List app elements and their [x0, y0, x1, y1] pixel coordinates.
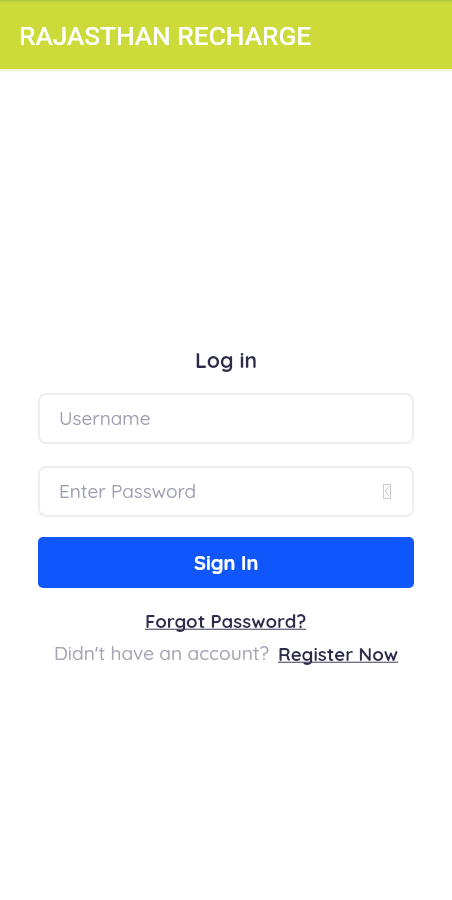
- staticText: RAJASTHAN RECHARGE: [19, 21, 312, 52]
- button[interactable]: Username: [38, 393, 414, 444]
- staticText: Log in: [0, 347, 452, 374]
- button[interactable]: Register Now: [278, 642, 399, 665]
- button[interactable]: Forgot Password?: [145, 609, 307, 632]
- button[interactable]: Show password: [383, 484, 391, 499]
- staticText: Sign In: [194, 550, 259, 575]
- staticText: Username: [59, 406, 151, 430]
- staticText: Enter Password: [59, 479, 197, 503]
- button[interactable]: Enter Password: [38, 466, 414, 517]
- button[interactable]: Sign In: [38, 537, 414, 588]
- staticText: Didn't have an account?: [54, 641, 269, 665]
